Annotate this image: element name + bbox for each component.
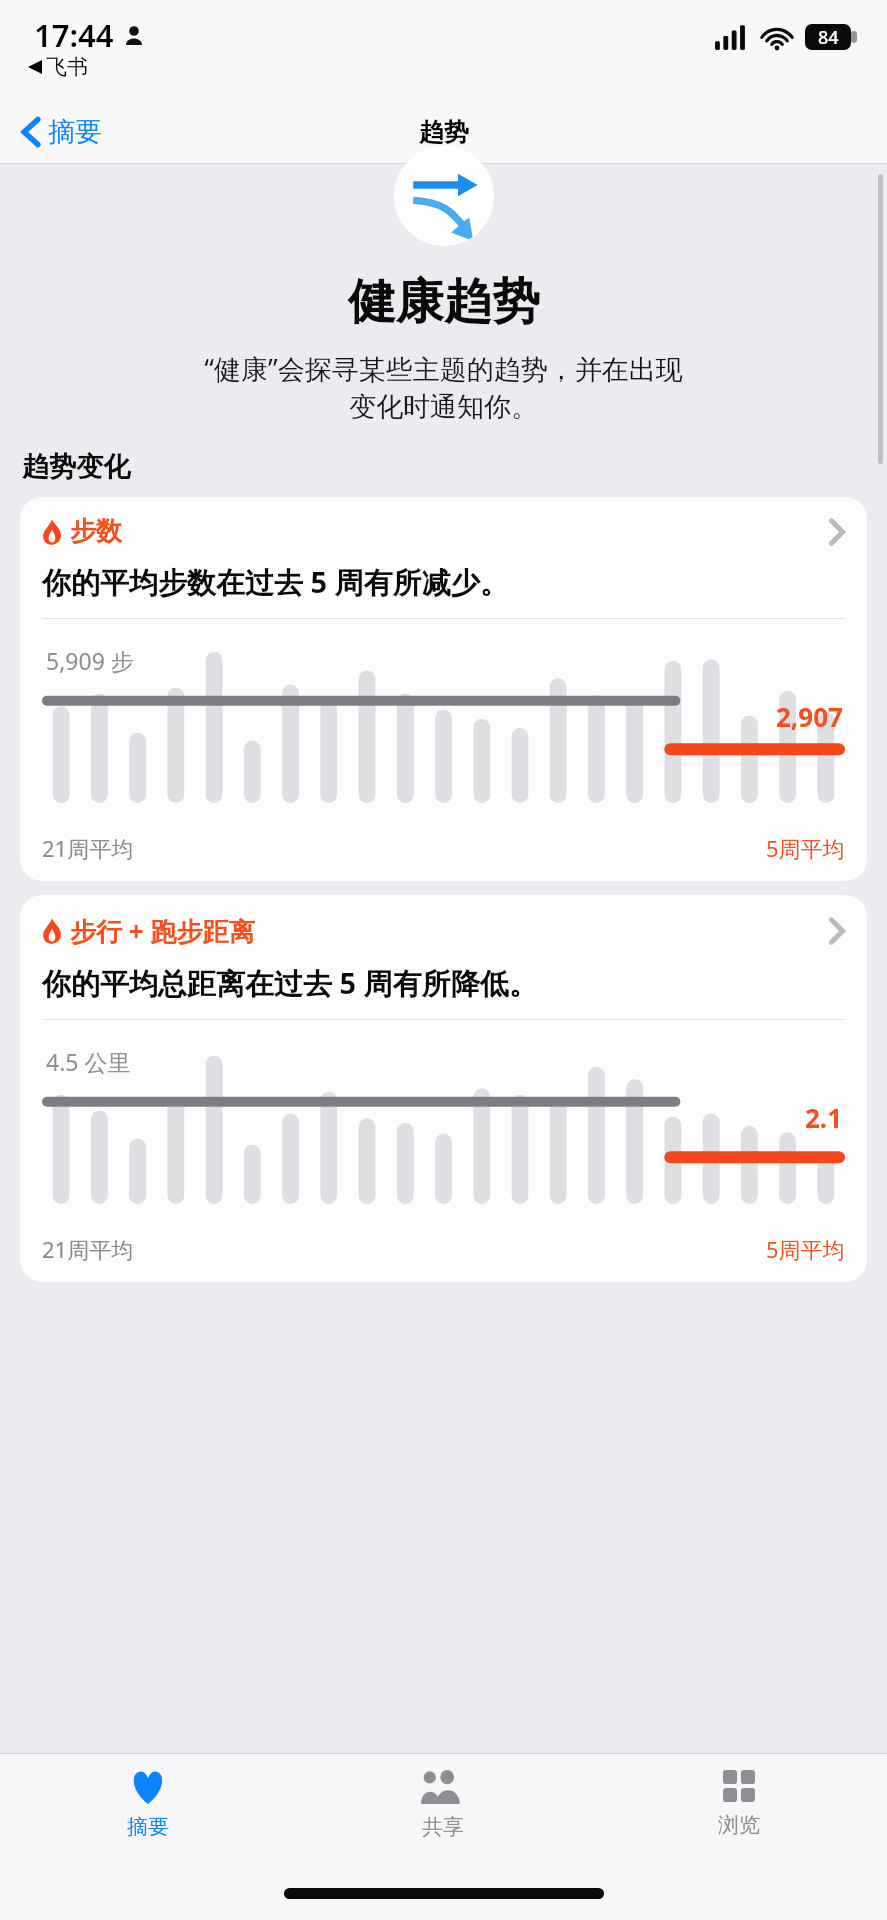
staticText: 飞书 <box>46 54 88 80</box>
staticText: 步数 <box>70 515 122 548</box>
staticText: 步行 + 跑步距离 <box>70 913 255 949</box>
staticText: 2,907 <box>776 699 843 734</box>
staticText: 趋势 <box>419 117 469 148</box>
staticText: 5周平均 <box>766 1234 845 1264</box>
staticText: 你的平均总距离在过去 5 周有所降低。 <box>42 963 538 1003</box>
staticText: 摘要 <box>127 1814 169 1840</box>
staticText: 浏览 <box>718 1812 760 1838</box>
staticText: “健康”会探寻某些主题的趋势，并在出现 变化时通知你。 <box>204 350 683 424</box>
staticText: 健康趋势 <box>348 272 540 332</box>
staticText: 84 <box>818 25 839 50</box>
button[interactable]: 摘要 <box>16 111 108 153</box>
staticText: 17:44 <box>34 14 114 56</box>
staticText: 你的平均步数在过去 5 周有所减少。 <box>42 562 509 602</box>
staticText: 21周平均 <box>42 1234 134 1264</box>
staticText: 趋势变化 <box>22 450 130 484</box>
button[interactable]: 浏览 <box>591 1754 887 1874</box>
staticText: 2.1 <box>805 1100 843 1135</box>
staticText: 共享 <box>422 1814 464 1840</box>
button[interactable]: 步行 + 跑步距离 <box>20 895 867 1282</box>
staticText: 21周平均 <box>42 833 134 863</box>
staticText: 5周平均 <box>766 833 845 863</box>
staticText: 4.5 公里 <box>46 1046 131 1077</box>
staticText: 5,909 步 <box>46 645 134 676</box>
button[interactable]: 共享 <box>295 1754 591 1874</box>
staticText: 摘要 <box>48 115 102 149</box>
button[interactable]: 步数 <box>20 497 867 881</box>
button[interactable]: 摘要 <box>0 1754 295 1874</box>
